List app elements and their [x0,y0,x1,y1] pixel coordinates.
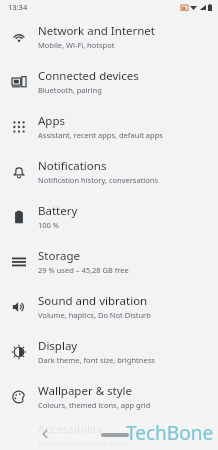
staticText: 13:34 [8,2,28,12]
staticText: Colours, themed icons, app grid [38,400,151,410]
staticText: 29 % used – 45,28 GB free [38,265,129,275]
staticText: TechBone [126,420,214,446]
staticText: Volume, haptics, Do Not Disturb [38,310,151,320]
button[interactable]: Apps [0,104,218,149]
staticText: Apps [38,113,66,129]
staticText: 100 % [38,220,60,230]
staticText: Display [38,338,78,354]
button[interactable]: Accessibility [0,419,218,450]
button[interactable]: Sound and vibration [0,284,218,329]
staticText: Network and Internet [38,23,156,39]
staticText: Sound and vibration [38,293,148,309]
staticText: Storage [38,248,80,264]
button[interactable]: Notifications [0,149,218,194]
button[interactable]: Battery [0,194,218,239]
staticText: Dark theme, font size, brightness [38,355,155,365]
staticText: Accessibility [38,421,103,437]
staticText: Assistant, recent apps, default apps [38,130,163,140]
button[interactable]: Wallpaper & style [0,374,218,419]
staticText: Battery [38,203,78,219]
staticText: Notification history, conversations [38,175,159,185]
staticText: Notifications [38,158,107,174]
button[interactable]: Storage [0,239,218,284]
button[interactable]: Network and Internet [0,14,218,59]
button[interactable]: Back [36,425,54,443]
staticText: Bluetooth, pairing [38,85,102,95]
button[interactable]: Display [0,329,218,374]
staticText: Display, interaction, audio [38,438,130,448]
staticText: Connected devices [38,68,139,84]
button[interactable]: Connected devices [0,59,218,104]
staticText: Mobile, Wi-Fi, hotspot [38,40,115,50]
button[interactable]: Home [101,433,129,437]
staticText: Wallpaper & style [38,383,133,399]
